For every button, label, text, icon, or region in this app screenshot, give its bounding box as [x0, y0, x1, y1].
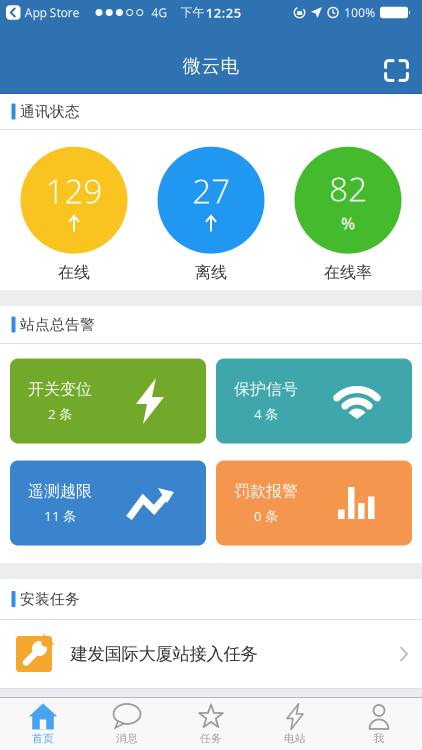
- staticText: 100%: [344, 4, 375, 20]
- staticText: 129: [45, 168, 102, 213]
- button[interactable]: 首页: [1, 699, 85, 749]
- staticText: 任务: [200, 732, 222, 745]
- staticText: 我: [373, 732, 384, 745]
- staticText: 通讯状态: [20, 102, 80, 120]
- staticText: 0 条: [254, 507, 278, 525]
- staticText: 建发国际大厦站接入任务: [70, 643, 257, 665]
- staticText: 4 条: [254, 405, 278, 423]
- button[interactable]: 我: [337, 699, 421, 749]
- staticText: 消息: [116, 732, 138, 745]
- button[interactable]: 消息: [85, 699, 169, 749]
- staticText: 电站: [284, 732, 306, 745]
- staticText: 安装任务: [20, 590, 80, 608]
- staticText: App Store: [24, 4, 79, 20]
- staticText: 罚款报警: [234, 481, 298, 501]
- staticText: 82: [329, 166, 367, 211]
- staticText: 离线: [195, 263, 227, 282]
- staticText: 遥测越限: [28, 481, 92, 501]
- button[interactable]: 建发国际大厦站接入任务: [0, 620, 422, 688]
- staticText: 下午: [180, 5, 204, 20]
- staticText: 首页: [32, 732, 54, 745]
- button[interactable]: 开关变位: [10, 358, 206, 443]
- button[interactable]: 罚款报警: [216, 460, 412, 545]
- staticText: 保护信号: [234, 379, 298, 399]
- staticText: 站点总告警: [20, 315, 95, 333]
- button[interactable]: 任务: [169, 699, 253, 749]
- staticText: 在线率: [324, 263, 372, 282]
- button[interactable]: 保护信号: [216, 358, 412, 443]
- button[interactable]: 遥测越限: [10, 460, 206, 545]
- staticText: 27: [192, 168, 230, 213]
- button[interactable]: 全屏: [384, 59, 422, 82]
- staticText: 12:25: [205, 4, 241, 21]
- staticText: 2 条: [48, 405, 72, 423]
- staticText: 开关变位: [28, 379, 92, 399]
- staticText: 11 条: [44, 507, 76, 525]
- staticText: 微云电: [182, 54, 239, 77]
- staticText: %: [341, 213, 355, 234]
- staticText: 4G: [151, 4, 167, 20]
- button[interactable]: 电站: [253, 699, 337, 749]
- staticText: 在线: [58, 263, 90, 282]
- button[interactable]: Back to App Store: [6, 4, 79, 20]
